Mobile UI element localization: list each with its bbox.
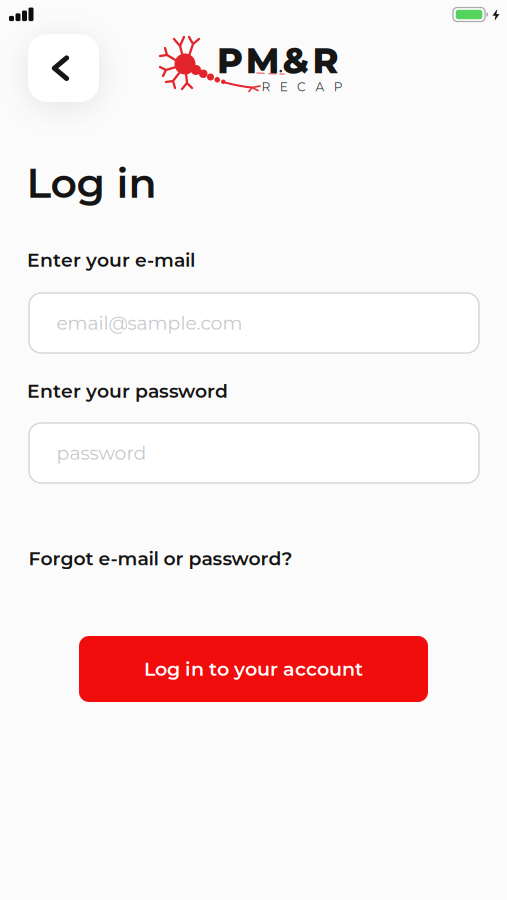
button[interactable] [28, 34, 99, 102]
staticText: A [315, 79, 324, 94]
staticText: Log in to your account [144, 657, 363, 681]
button[interactable]: Log in to your account [79, 636, 428, 702]
staticText: R [261, 79, 270, 94]
staticText: & [283, 39, 310, 82]
staticText: password [56, 441, 146, 464]
staticText: Enter your e-mail [27, 248, 195, 271]
staticText: Forgot e-mail or password? [28, 547, 292, 570]
staticText: C [297, 79, 306, 94]
button[interactable]: email@sample.com [29, 293, 479, 353]
staticText: P [217, 39, 243, 82]
button[interactable]: password [29, 423, 479, 483]
staticText: E [280, 79, 288, 94]
staticText: Enter your password [27, 379, 228, 402]
staticText: R [312, 39, 338, 82]
staticText: Log in [26, 158, 156, 208]
staticText: P [334, 79, 343, 94]
button[interactable]: Forgot e-mail or password? [28, 547, 292, 570]
staticText: M [246, 39, 280, 82]
staticText: email@sample.com [56, 311, 242, 334]
